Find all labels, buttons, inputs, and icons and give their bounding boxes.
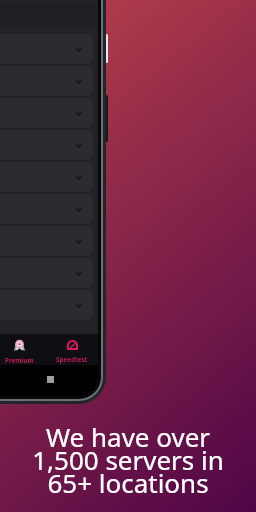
staticText: Premium [5,356,34,365]
staticText: We have over 1,500 servers in 65+ locati… [0,419,256,501]
button[interactable]: Premium [0,334,43,365]
button[interactable]: Speedtest [48,334,96,365]
staticText: Speedtest [56,355,88,364]
